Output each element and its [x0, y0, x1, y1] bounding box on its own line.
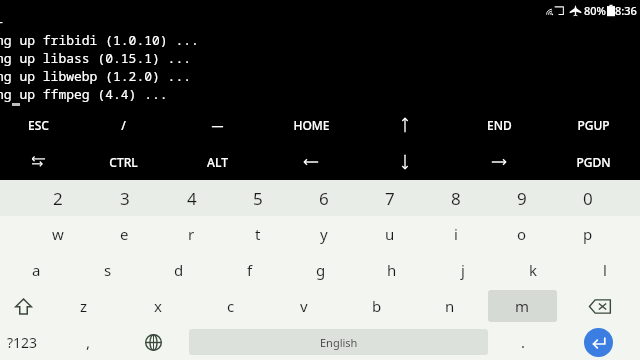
button[interactable]: 0 — [555, 180, 621, 216]
button[interactable]: Tab — [0, 143, 76, 180]
button[interactable]: 6 — [291, 180, 357, 216]
button[interactable]: o — [489, 216, 555, 252]
staticText: 7 — [385, 187, 395, 210]
button[interactable]: x — [121, 288, 194, 324]
button[interactable]: 9 — [489, 180, 555, 216]
staticText: c — [227, 296, 235, 316]
staticText: x — [154, 296, 162, 316]
staticText: CTRL — [109, 154, 138, 170]
staticText: ng up libass (0.15.1) ... — [0, 49, 192, 67]
button[interactable]: PGUP — [546, 106, 640, 143]
button[interactable]: HOME — [264, 106, 358, 143]
staticText: m — [515, 296, 530, 316]
staticText: HOME — [293, 117, 330, 133]
staticText: 80% — [584, 3, 606, 18]
staticText: ng up libwebp (1.2.0) ... — [0, 67, 192, 85]
button[interactable]: w — [24, 216, 91, 252]
button[interactable]: Arrow right — [452, 143, 546, 180]
button[interactable]: Arrow left — [264, 143, 358, 180]
button[interactable]: Backspace — [559, 288, 640, 324]
button[interactable]: d — [143, 252, 214, 288]
button[interactable]: h — [356, 252, 427, 288]
button[interactable]: 3 — [91, 180, 158, 216]
staticText: u — [385, 224, 395, 244]
staticText: / — [121, 117, 126, 133]
staticText: 0 — [583, 187, 593, 210]
button[interactable]: CTRL — [76, 143, 170, 180]
button[interactable]: k — [498, 252, 569, 288]
staticText: 3 — [120, 187, 130, 210]
button[interactable]: ESC — [0, 106, 76, 143]
staticText: i — [454, 224, 458, 244]
staticText: 8 — [451, 187, 461, 210]
button[interactable]: / — [76, 106, 170, 143]
staticText: e — [120, 224, 129, 244]
staticText: 8:36 — [615, 3, 637, 18]
button[interactable]: Enter — [556, 324, 640, 360]
staticText: d — [174, 260, 184, 280]
staticText: ALT — [207, 154, 228, 170]
button[interactable]: Arrow up — [358, 106, 452, 143]
button[interactable]: END — [452, 106, 546, 143]
staticText: g — [316, 260, 326, 280]
staticText: ESC — [28, 117, 49, 133]
staticText: b — [372, 296, 382, 316]
button[interactable]: z — [47, 288, 121, 324]
button[interactable]: 5 — [225, 180, 291, 216]
button[interactable]: y — [291, 216, 357, 252]
button[interactable]: p — [555, 216, 621, 252]
staticText: l — [603, 260, 607, 280]
button[interactable]: i — [423, 216, 489, 252]
staticText: ?123 — [7, 333, 38, 352]
staticText: o — [517, 224, 527, 244]
staticText: p — [583, 224, 593, 244]
button[interactable]: c — [194, 288, 267, 324]
staticText: ng up fribidi (1.0.10) ... — [0, 31, 199, 49]
staticText: ng up ffmpeg (4.4) ... — [0, 85, 168, 103]
button[interactable]: , — [56, 324, 121, 360]
staticText: r — [188, 224, 195, 244]
button[interactable]: l — [569, 252, 640, 288]
staticText: 2 — [53, 187, 63, 210]
button[interactable]: 7 — [357, 180, 423, 216]
staticText: r_ — [0, 15, 11, 25]
button[interactable]: v — [267, 288, 340, 324]
button[interactable]: 4 — [158, 180, 225, 216]
button[interactable]: ?123 — [0, 324, 56, 360]
button[interactable]: r — [158, 216, 225, 252]
staticText: — — [211, 117, 224, 133]
staticText: t — [255, 224, 261, 244]
button[interactable]: 2 — [24, 180, 91, 216]
button[interactable]: English — [189, 329, 488, 355]
button[interactable]: s — [72, 252, 143, 288]
staticText: v — [300, 296, 308, 316]
staticText: s — [104, 260, 112, 280]
button[interactable]: f — [214, 252, 285, 288]
button[interactable]: a — [0, 252, 72, 288]
staticText: k — [529, 260, 538, 280]
button[interactable]: n — [413, 288, 486, 324]
staticText: 6 — [319, 187, 329, 210]
staticText: END — [487, 117, 512, 133]
staticText: English — [320, 335, 358, 350]
staticText: a — [32, 260, 41, 280]
button[interactable]: ALT — [170, 143, 264, 180]
button[interactable]: m — [488, 290, 557, 322]
button[interactable]: Arrow down — [358, 143, 452, 180]
staticText: 5 — [253, 187, 263, 210]
button[interactable]: — — [170, 106, 264, 143]
button[interactable]: t — [225, 216, 291, 252]
button[interactable]: j — [427, 252, 498, 288]
button[interactable]: PGDN — [546, 143, 640, 180]
button[interactable]: e — [91, 216, 158, 252]
button[interactable]: Shift — [0, 288, 47, 324]
button[interactable]: g — [285, 252, 356, 288]
staticText: h — [387, 260, 397, 280]
button[interactable]: 8 — [423, 180, 489, 216]
staticText: PGUP — [577, 117, 610, 133]
button[interactable]: Change keyboard language — [121, 324, 186, 360]
button[interactable]: b — [340, 288, 413, 324]
button[interactable]: . — [491, 324, 556, 360]
button[interactable]: u — [357, 216, 423, 252]
